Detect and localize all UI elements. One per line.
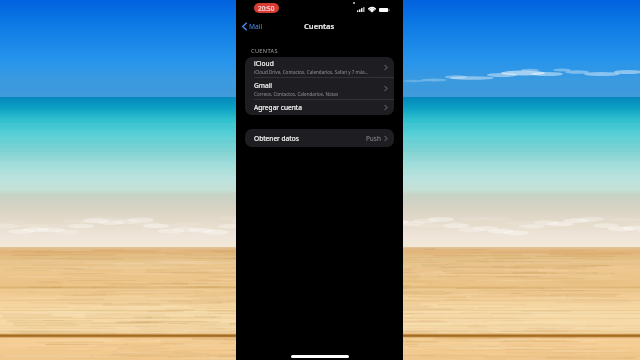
staticText: Gmail	[254, 81, 273, 90]
button[interactable]: Obtener datos	[245, 129, 394, 147]
staticText: Cuentas	[304, 21, 335, 31]
staticText: Mail	[249, 22, 263, 31]
staticText: iCloud Drive, Contactos, Calendarios, Sa…	[254, 69, 369, 75]
staticText: Correos, Contactos, Calendarios, Notas	[254, 91, 339, 97]
button[interactable]: Agregar cuenta	[245, 100, 394, 115]
staticText: 20:50	[258, 4, 275, 13]
button[interactable]: Mail	[240, 20, 265, 33]
button[interactable]: Gmail	[245, 78, 394, 99]
staticText: Obtener datos	[254, 134, 366, 143]
staticText: iCloud	[254, 59, 274, 68]
other: Screen recording 20:50	[254, 3, 279, 13]
staticText: Push	[366, 134, 381, 143]
staticText: Agregar cuenta	[254, 103, 384, 112]
button[interactable]: iCloud	[245, 57, 394, 77]
staticText: CUENTAS	[251, 47, 278, 55]
